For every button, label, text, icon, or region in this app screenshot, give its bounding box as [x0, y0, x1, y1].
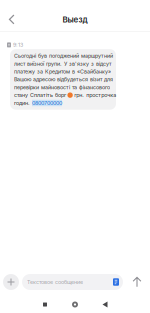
staticText: платежу за Кредитом в «Свайбанку»	[14, 68, 111, 75]
staticText: годин.	[14, 100, 30, 106]
button[interactable]: Back	[1, 8, 23, 30]
button[interactable]: Back	[90, 296, 120, 313]
staticText: грн. прострочка	[74, 92, 116, 98]
staticText: Вашою адресою відбудеться візит для	[14, 76, 113, 83]
button[interactable]: Recent apps	[30, 296, 60, 313]
button[interactable]: Add attachment	[3, 274, 19, 290]
button[interactable]: Home	[60, 296, 90, 313]
button[interactable]: Текстовое сообщение	[22, 274, 123, 290]
staticText: лист виїзної групи. У зв'язку з відсут	[14, 60, 111, 67]
staticText: Текстовое сообщение	[27, 279, 83, 285]
staticText: стану Сплатіть борг	[14, 92, 66, 98]
staticText: перевірки майновості та фінансового	[14, 84, 110, 91]
staticText: Сьогодні був погоджений маршрутний	[14, 53, 113, 59]
staticText: 9:13	[13, 42, 23, 48]
staticText: 0800700000	[32, 100, 62, 106]
button[interactable]: Send	[129, 274, 145, 290]
staticText: Выезд	[62, 15, 87, 24]
